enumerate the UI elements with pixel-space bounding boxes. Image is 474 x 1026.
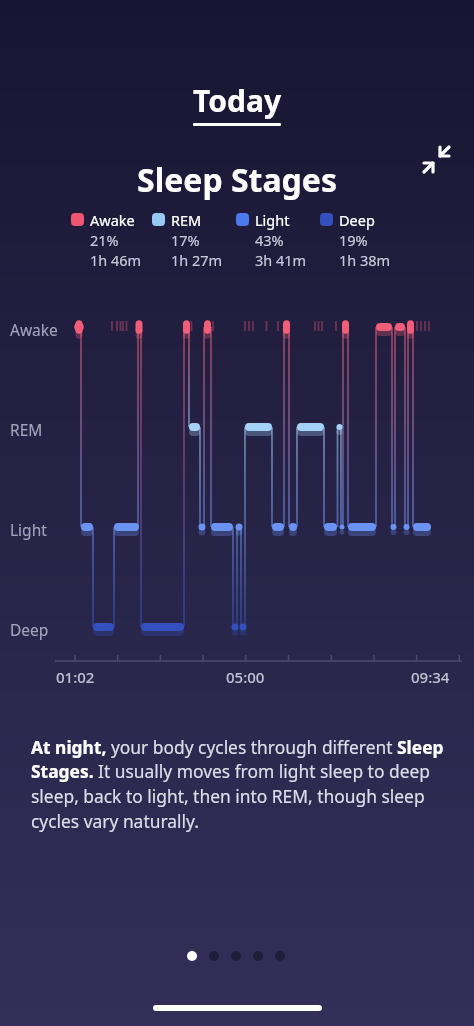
staticText: 09:34	[411, 667, 450, 687]
button[interactable]	[231, 951, 241, 961]
staticText: Awake	[10, 319, 58, 340]
staticText: REM	[171, 210, 202, 230]
staticText: Light	[255, 210, 290, 230]
staticText: 1h 27m	[171, 250, 223, 270]
staticText: 21%	[90, 230, 119, 250]
button[interactable]	[275, 951, 285, 961]
button[interactable]	[418, 139, 458, 179]
staticText: 1h 38m	[339, 250, 391, 270]
staticText: At night, your body cycles through diffe…	[31, 735, 444, 833]
staticText: 1h 46m	[90, 250, 142, 270]
staticText: 3h 41m	[255, 250, 307, 270]
button[interactable]	[187, 951, 197, 961]
staticText: 19%	[339, 230, 368, 250]
staticText: 17%	[171, 230, 200, 250]
staticText: Sleep Stages	[137, 158, 338, 202]
staticText: 43%	[255, 230, 284, 250]
staticText: 05:00	[226, 667, 265, 687]
staticText: 01:02	[56, 667, 95, 687]
staticText: Deep	[10, 619, 49, 640]
button[interactable]	[253, 951, 263, 961]
staticText: Deep	[339, 210, 375, 230]
staticText: REM	[10, 419, 43, 440]
staticText: Light	[10, 519, 47, 540]
button[interactable]	[209, 951, 219, 961]
staticText: Today	[193, 80, 282, 121]
staticText: Awake	[90, 210, 135, 230]
